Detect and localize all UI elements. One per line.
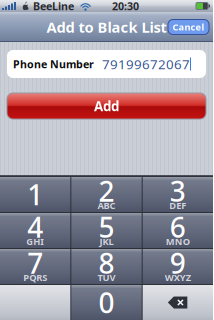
staticText: 7 xyxy=(27,244,43,282)
staticText: BeeLine xyxy=(33,0,74,13)
staticText: DEF xyxy=(169,199,186,212)
staticText: 3 xyxy=(170,172,186,210)
button[interactable]: 7 xyxy=(0,249,70,284)
staticText: ABC xyxy=(97,199,115,212)
staticText: 8 xyxy=(98,244,114,282)
button[interactable]: 2 xyxy=(71,177,142,212)
button[interactable]: Cancel xyxy=(168,19,209,34)
staticText: Add xyxy=(94,97,119,115)
staticText: MNO xyxy=(166,235,190,248)
staticText: 1 xyxy=(27,176,43,213)
staticText: 2 xyxy=(98,172,114,210)
staticText: 79199672067 xyxy=(102,55,190,73)
staticText: JKL xyxy=(99,235,113,248)
button[interactable]: Delete xyxy=(143,285,213,320)
staticText: TUV xyxy=(97,271,115,284)
staticText: WXYZ xyxy=(165,271,191,284)
staticText: Add to Black List xyxy=(46,17,166,37)
staticText: Phone Number xyxy=(13,57,94,71)
button[interactable]: 4 xyxy=(0,213,70,248)
button[interactable]: 3 xyxy=(143,177,213,212)
staticText: 4 xyxy=(27,208,43,246)
staticText: Cancel xyxy=(172,21,204,33)
button[interactable]: Add xyxy=(0,78,213,119)
staticText: 5 xyxy=(98,208,114,246)
button[interactable]: 0 xyxy=(71,285,142,320)
staticText: 6 xyxy=(170,208,186,246)
button[interactable]: 9 xyxy=(143,249,213,284)
staticText: 9 xyxy=(170,244,186,282)
staticText: PQRS xyxy=(23,271,47,284)
staticText: GHI xyxy=(26,235,44,248)
staticText: 20:30 xyxy=(112,0,139,13)
button[interactable]: 8 xyxy=(71,249,142,284)
button[interactable]: 1 xyxy=(0,177,70,212)
staticText: 0 xyxy=(98,284,114,320)
button[interactable]: 6 xyxy=(143,213,213,248)
button[interactable]: 5 xyxy=(71,213,142,248)
